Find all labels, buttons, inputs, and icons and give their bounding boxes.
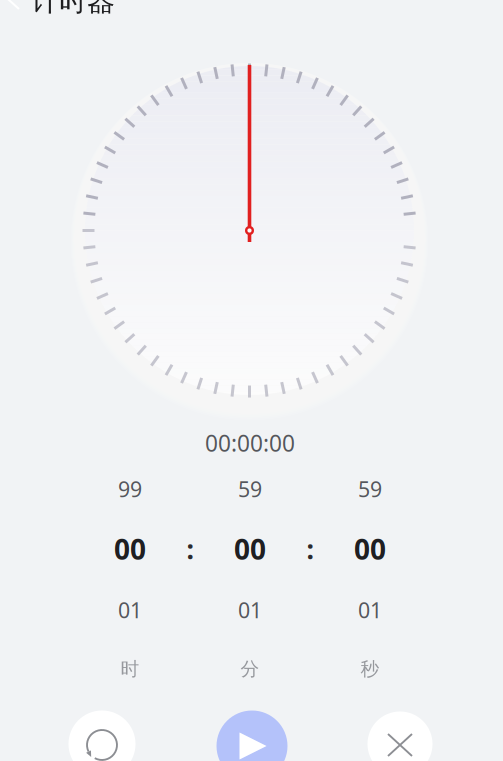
button[interactable]: Cancel bbox=[367, 711, 432, 761]
staticText: 01 bbox=[118, 596, 142, 624]
staticText: 01 bbox=[358, 596, 382, 624]
staticText: 01 bbox=[238, 596, 262, 624]
staticText: 秒 bbox=[360, 657, 379, 680]
button[interactable]: Back bbox=[9, 0, 19, 9]
staticText: 99 bbox=[118, 475, 142, 503]
staticText: : bbox=[186, 531, 193, 567]
button[interactable]: Reset bbox=[68, 710, 135, 761]
staticText: 分 bbox=[240, 657, 259, 680]
staticText: : bbox=[306, 531, 313, 567]
staticText: 00 bbox=[114, 530, 146, 568]
staticText: 59 bbox=[238, 475, 262, 503]
staticText: 时 bbox=[120, 657, 139, 680]
staticText: 00:00:00 bbox=[205, 428, 295, 458]
staticText: 计时器 bbox=[31, 0, 115, 18]
button[interactable]: Start bbox=[216, 710, 287, 761]
staticText: 00 bbox=[234, 530, 266, 568]
staticText: 00 bbox=[354, 530, 386, 568]
staticText: 59 bbox=[358, 475, 382, 503]
